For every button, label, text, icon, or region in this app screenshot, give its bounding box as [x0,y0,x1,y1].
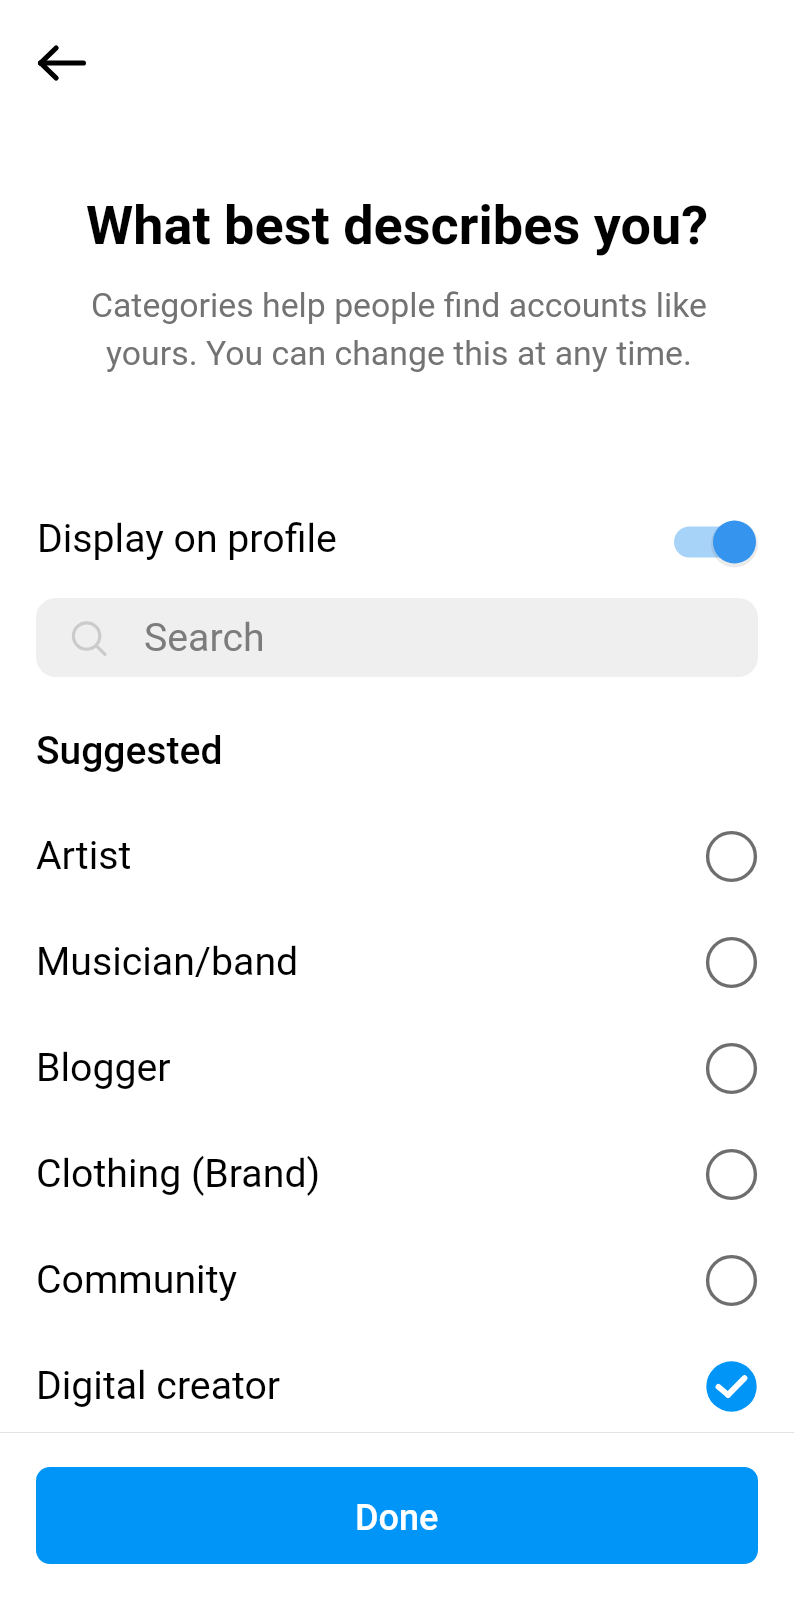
staticText: Done [355,1497,439,1539]
staticText: Display on profile [37,516,337,562]
staticText: Artist [36,833,132,879]
staticText: Search [144,615,265,661]
staticText: Suggested [36,728,223,774]
button[interactable]: Display on profile [0,503,794,575]
button[interactable]: Back [14,39,110,87]
other: Display on profile toggle [674,511,757,567]
button[interactable]: Digital creator [0,1333,794,1439]
staticText: Community [36,1257,238,1303]
staticText: Blogger [36,1045,171,1091]
button[interactable]: Clothing (Brand) [0,1121,794,1227]
staticText: Digital creator [36,1363,281,1409]
button[interactable]: Community [0,1227,794,1333]
staticText: Categories help people find accounts lik… [74,286,724,373]
button[interactable]: Artist [0,803,794,909]
staticText: What best describes you? [0,194,794,257]
button[interactable]: Blogger [0,1015,794,1121]
button[interactable]: Done [36,1467,758,1564]
staticText: Musician/band [36,939,299,985]
button[interactable]: Musician/band [0,909,794,1015]
staticText: Clothing (Brand) [36,1151,321,1197]
button[interactable]: Search [36,598,758,677]
